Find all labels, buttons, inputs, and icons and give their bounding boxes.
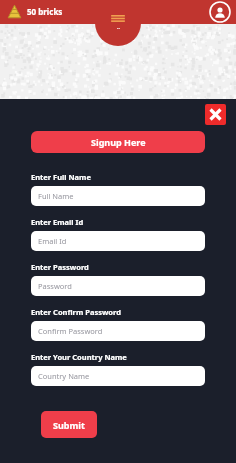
button[interactable]: Submit: [41, 411, 97, 438]
staticText: Enter Your Country Name: [31, 352, 127, 362]
button[interactable]: Close: [205, 104, 226, 125]
staticText: Enter Email Id: [31, 217, 84, 227]
button[interactable]: 50 bricks: [5, 2, 65, 21]
staticText: Email Id: [38, 236, 67, 246]
button[interactable]: Password: [31, 276, 205, 296]
staticText: Password: [38, 281, 72, 291]
staticText: Enter Full Name: [31, 172, 91, 182]
staticText: Signup Here: [91, 136, 146, 148]
button[interactable]: Profile: [210, 2, 230, 22]
staticText: Submit: [53, 419, 85, 431]
button[interactable]: Country Name: [31, 366, 205, 386]
staticText: Enter Confirm Password: [31, 307, 121, 317]
button[interactable]: Full Name: [31, 186, 205, 206]
staticText: Country Name: [38, 371, 90, 381]
button[interactable]: Confirm Password: [31, 321, 205, 341]
staticText: Enter Password: [31, 262, 89, 272]
staticText: 50 bricks: [27, 6, 63, 17]
staticText: Confirm Password: [38, 326, 103, 336]
staticText: ..: [117, 24, 120, 31]
button[interactable]: Signup Here: [31, 131, 205, 153]
staticText: Full Name: [38, 191, 74, 201]
button[interactable]: Email Id: [31, 231, 205, 251]
